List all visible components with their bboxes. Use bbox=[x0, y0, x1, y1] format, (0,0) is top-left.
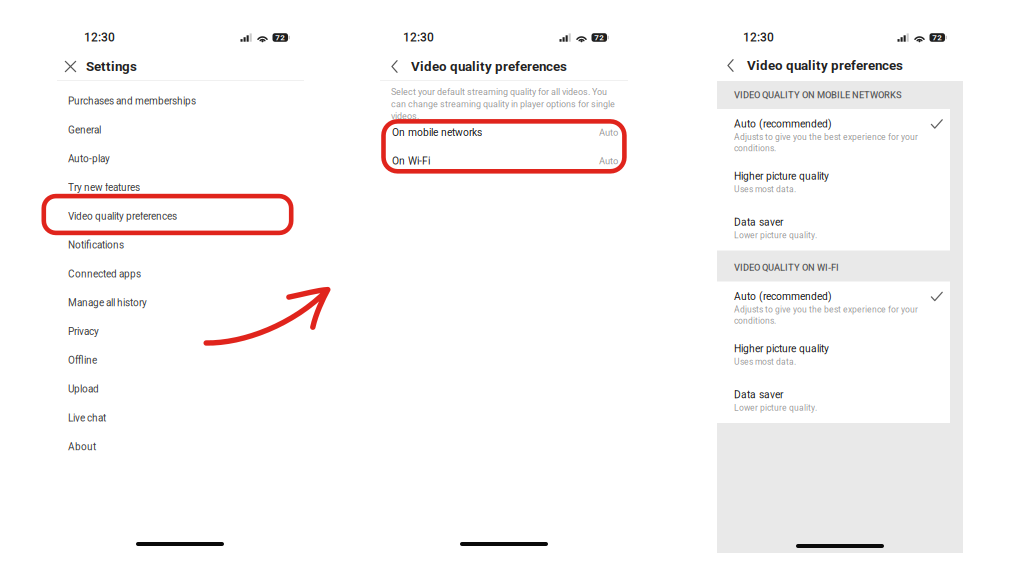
staticText: Lower picture quality. bbox=[734, 403, 817, 413]
staticText: Video quality preferences bbox=[747, 58, 903, 73]
button[interactable]: Offline bbox=[0, 346, 304, 375]
button[interactable]: Manage all history bbox=[0, 288, 304, 317]
button[interactable]: Higher picture quality bbox=[717, 153, 950, 194]
staticText: On Wi-Fi bbox=[392, 155, 430, 167]
staticText: About bbox=[68, 441, 96, 453]
button[interactable]: General bbox=[0, 116, 304, 144]
button[interactable]: Back bbox=[719, 54, 742, 77]
button[interactable]: Connected apps bbox=[0, 260, 304, 288]
button[interactable]: About bbox=[0, 432, 304, 461]
button[interactable]: Auto-play bbox=[0, 144, 304, 173]
staticText: Manage all history bbox=[68, 297, 147, 309]
staticText: 12:30 bbox=[403, 30, 434, 45]
staticText: 12:30 bbox=[743, 30, 774, 45]
button[interactable]: Live chat bbox=[0, 404, 304, 432]
staticText: Video quality preferences bbox=[411, 59, 567, 74]
staticText: Uses most data. bbox=[734, 184, 796, 194]
staticText: Uses most data. bbox=[734, 357, 796, 367]
button[interactable]: Purchases and memberships bbox=[0, 87, 304, 116]
staticText: Try new features bbox=[68, 182, 140, 193]
staticText: 72 bbox=[275, 33, 285, 42]
staticText: On mobile networks bbox=[392, 127, 482, 139]
staticText: Select your default streaming quality fo… bbox=[391, 87, 615, 121]
staticText: 72 bbox=[932, 33, 942, 42]
staticText: Notifications bbox=[68, 239, 124, 251]
staticText: Video quality preferences bbox=[68, 210, 177, 222]
staticText: Purchases and memberships bbox=[68, 95, 196, 107]
staticText: Data saver bbox=[734, 389, 783, 401]
staticText: Auto bbox=[599, 127, 618, 138]
staticText: Higher picture quality bbox=[734, 170, 829, 182]
staticText: 72 bbox=[594, 33, 604, 42]
staticText: Offline bbox=[68, 354, 97, 366]
button[interactable]: Privacy bbox=[0, 317, 304, 346]
button[interactable]: Notifications bbox=[0, 231, 304, 260]
staticText: Adjusts to give you the best experience … bbox=[734, 304, 918, 326]
staticText: Live chat bbox=[68, 412, 106, 424]
staticText: Lower picture quality. bbox=[734, 230, 817, 240]
staticText: Upload bbox=[68, 383, 99, 395]
button[interactable]: On Wi-Fi bbox=[370, 147, 618, 175]
staticText: Connected apps bbox=[68, 268, 141, 280]
staticText: VIDEO QUALITY ON WI-FI bbox=[734, 262, 839, 273]
staticText: Auto (recommended) bbox=[734, 118, 832, 130]
button[interactable]: On mobile networks bbox=[370, 118, 618, 147]
button[interactable]: Try new features bbox=[0, 173, 304, 202]
button[interactable]: Video quality preferences bbox=[0, 202, 304, 231]
staticText: Auto bbox=[599, 155, 618, 166]
button[interactable]: Higher picture quality bbox=[717, 326, 950, 367]
button[interactable]: Close bbox=[59, 55, 82, 78]
button[interactable]: Upload bbox=[0, 375, 304, 404]
staticText: Auto-play bbox=[68, 153, 110, 165]
button[interactable]: Back bbox=[383, 55, 406, 78]
staticText: 12:30 bbox=[84, 30, 115, 45]
staticText: VIDEO QUALITY ON MOBILE NETWORKS bbox=[734, 89, 902, 100]
staticText: Auto (recommended) bbox=[734, 290, 832, 302]
staticText: Settings bbox=[86, 59, 137, 74]
staticText: Higher picture quality bbox=[734, 343, 829, 355]
staticText: General bbox=[68, 124, 101, 136]
button[interactable]: Auto (recommended) bbox=[717, 281, 950, 326]
button[interactable]: Data saver bbox=[717, 194, 950, 240]
staticText: Adjusts to give you the best experience … bbox=[734, 132, 918, 153]
staticText: Data saver bbox=[734, 216, 783, 228]
button[interactable]: Auto (recommended) bbox=[717, 109, 950, 153]
staticText: Privacy bbox=[68, 326, 99, 337]
button[interactable]: Data saver bbox=[717, 367, 950, 413]
